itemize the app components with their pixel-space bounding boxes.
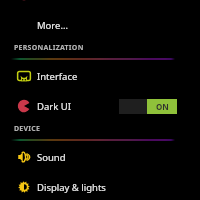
button[interactable]: Dark UI: [0, 91, 200, 121]
button[interactable]: More…: [0, 10, 200, 40]
button[interactable]: Display & lights: [0, 172, 200, 200]
button[interactable]: Dark UI toggle, on: [119, 99, 177, 114]
staticText: Sound: [37, 151, 66, 164]
staticText: ON: [156, 101, 169, 112]
staticText: More…: [37, 19, 68, 32]
button[interactable]: Interface: [0, 61, 200, 91]
staticText: Dark UI: [37, 100, 71, 113]
staticText: Display & lights: [37, 181, 106, 194]
button[interactable]: Sound: [0, 142, 200, 172]
staticText: DEVICE: [14, 124, 41, 134]
staticText: PERSONALIZATION: [14, 43, 84, 53]
staticText: Interface: [37, 70, 78, 83]
